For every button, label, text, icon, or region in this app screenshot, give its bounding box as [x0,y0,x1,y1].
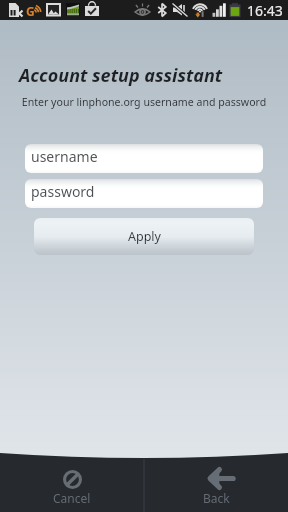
staticText: Back [203,490,230,506]
other: Back [207,468,236,489]
button[interactable]: username [25,144,263,173]
staticText: G [26,3,35,19]
staticText: Account setup assistant [19,63,223,88]
button[interactable]: password [25,179,263,208]
button[interactable]: Back [144,452,288,512]
staticText: Cancel [53,490,91,506]
staticText: password [31,182,95,201]
button[interactable]: Apply [34,218,254,255]
staticText: username [31,147,98,166]
staticText: 16:43 [247,1,283,20]
other: Cancel [63,470,82,489]
staticText: Enter your linphone.org username and pas… [0,95,288,109]
staticText: Apply [128,228,161,245]
button[interactable]: Cancel [0,452,144,512]
